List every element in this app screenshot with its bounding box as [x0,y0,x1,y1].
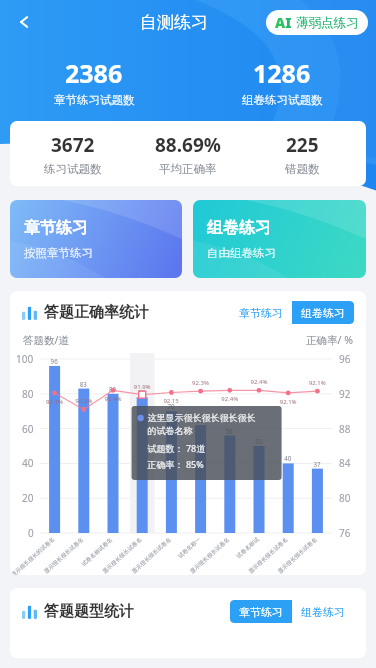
staticText: 答题题型统计 [44,602,134,621]
staticText: 正确率/ % [306,333,353,347]
staticText: 组卷练习试题数 [242,93,323,107]
button[interactable]: Back [6,3,44,41]
staticText: 章节练习 [239,605,283,619]
button[interactable]: 3672 [10,121,366,186]
staticText: 自由组卷练习 [207,246,276,260]
staticText: 章节练习 [24,218,88,238]
staticText: 3672 [51,132,95,158]
button[interactable]: 组卷练习 [193,200,366,278]
staticText: 章节练习试题数 [54,93,135,107]
staticText: 88.69% [155,132,221,158]
button[interactable]: AI [266,10,368,35]
staticText: 答题正确率统计 [44,303,149,322]
staticText: AI [275,13,292,32]
staticText: 组卷练习 [301,306,345,320]
staticText: 按照章节练习 [24,246,93,260]
button[interactable]: 组卷练习 [292,301,354,324]
button[interactable]: 章节练习 [230,600,292,623]
staticText: 错题数 [285,162,320,176]
staticText: 组卷练习 [207,218,271,238]
staticText: 答题数/道 [23,333,69,347]
staticText: 225 [286,132,319,158]
staticText: 1286 [253,56,311,90]
staticText: 2386 [65,56,123,90]
button[interactable]: 章节练习 [10,200,182,278]
staticText: 章节练习 [239,306,283,320]
staticText: 薄弱点练习 [296,15,359,31]
button[interactable]: 章节练习 [230,301,292,324]
staticText: 自测练习 [140,12,208,33]
staticText: 组卷练习 [301,605,345,619]
staticText: 练习试题数 [44,162,102,176]
staticText: 平均正确率 [159,162,217,176]
button[interactable]: 组卷练习 [292,600,354,623]
